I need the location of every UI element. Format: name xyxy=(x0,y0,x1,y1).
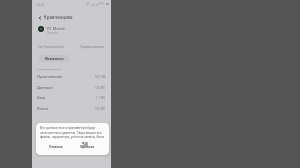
button[interactable]: Back xyxy=(36,14,43,21)
staticText: Все данные этого приложения будут оконча… xyxy=(40,126,107,138)
staticText: Отмена xyxy=(49,144,63,149)
staticText: 14:21 xyxy=(36,2,45,7)
staticText: 58 xyxy=(82,140,88,147)
staticText: Онлайн xyxy=(47,31,58,35)
staticText: Приложение xyxy=(37,74,63,80)
staticText: Тип: Персональный xyxy=(38,45,64,49)
button[interactable]: PC Mobile xyxy=(32,24,111,34)
button[interactable]: Изменить xyxy=(39,55,70,62)
staticText: Кэш xyxy=(37,95,46,101)
staticText: Всего xyxy=(37,106,49,112)
button[interactable]: Приложение xyxy=(32,71,111,82)
button[interactable]: Данные xyxy=(32,82,111,93)
button[interactable]: Всего xyxy=(32,103,111,114)
button[interactable]: Отмена xyxy=(47,143,65,150)
staticText: 87% xyxy=(99,2,105,6)
staticText: Использовано места xyxy=(37,67,62,70)
staticText: Кравченцева xyxy=(44,14,73,20)
staticText: PC Mobile xyxy=(47,26,65,31)
staticText: Удалить xyxy=(80,144,95,149)
button[interactable]: Удалить xyxy=(78,143,97,150)
staticText: Изменить xyxy=(45,56,64,61)
staticText: 145 МБ xyxy=(95,86,106,90)
staticText: 1,1 МБ xyxy=(96,96,106,100)
button[interactable]: Кэш xyxy=(32,92,111,103)
staticText: 68,7 МБ xyxy=(95,75,106,79)
staticText: 4G xyxy=(86,2,90,6)
staticText: Профиль аккаунта xyxy=(80,45,105,49)
staticText: Данные xyxy=(37,85,53,91)
staticText: 214 МБ xyxy=(95,107,106,111)
